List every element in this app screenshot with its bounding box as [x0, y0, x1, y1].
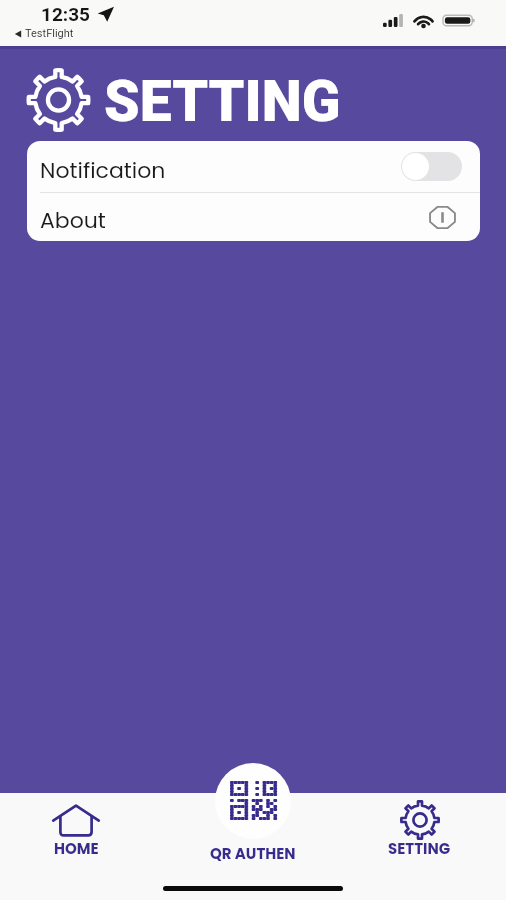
button[interactable]: Notification — [27, 141, 480, 192]
staticText: HOME — [54, 838, 99, 859]
staticText: TestFlight — [25, 27, 74, 40]
staticText: SETTING — [104, 68, 341, 135]
staticText: About — [40, 205, 106, 236]
staticText: 12:35 — [41, 3, 90, 25]
button[interactable]: HOME — [42, 797, 110, 859]
button[interactable]: About — [27, 193, 480, 241]
button[interactable]: Notification toggle — [401, 152, 462, 181]
staticText: Notification — [40, 155, 166, 186]
button[interactable]: QR Authen — [215, 763, 291, 839]
staticText: SETTING — [388, 838, 451, 859]
button[interactable]: SETTING — [378, 797, 461, 859]
staticText: QR AUTHEN — [210, 843, 296, 864]
